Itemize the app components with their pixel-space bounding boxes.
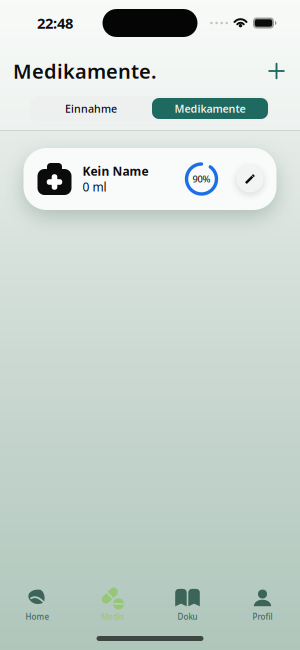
staticText: 0 ml [82, 179, 106, 195]
button[interactable]: Kein Name [23, 148, 276, 210]
staticText: Medis [101, 611, 124, 622]
button[interactable]: Medikament hinzufügen [262, 56, 291, 85]
staticText: 90% [192, 173, 210, 185]
staticText: Einnahme [65, 101, 117, 116]
staticText: Doku [177, 611, 197, 622]
staticText: Medikamente. [13, 58, 157, 84]
button[interactable]: Bearbeiten [236, 165, 263, 192]
staticText: Profil [252, 611, 272, 622]
staticText: Home [25, 611, 49, 622]
button[interactable]: Home [0, 586, 75, 622]
button[interactable]: Profil [225, 586, 300, 622]
staticText: 22:48 [37, 13, 73, 33]
staticText: Kein Name [82, 163, 148, 179]
button[interactable]: Einnahme [30, 96, 152, 121]
button[interactable]: Medikamente [152, 98, 268, 119]
button[interactable]: Doku [150, 586, 225, 622]
staticText: Medikamente [174, 101, 245, 116]
button[interactable]: Medis [75, 586, 150, 622]
